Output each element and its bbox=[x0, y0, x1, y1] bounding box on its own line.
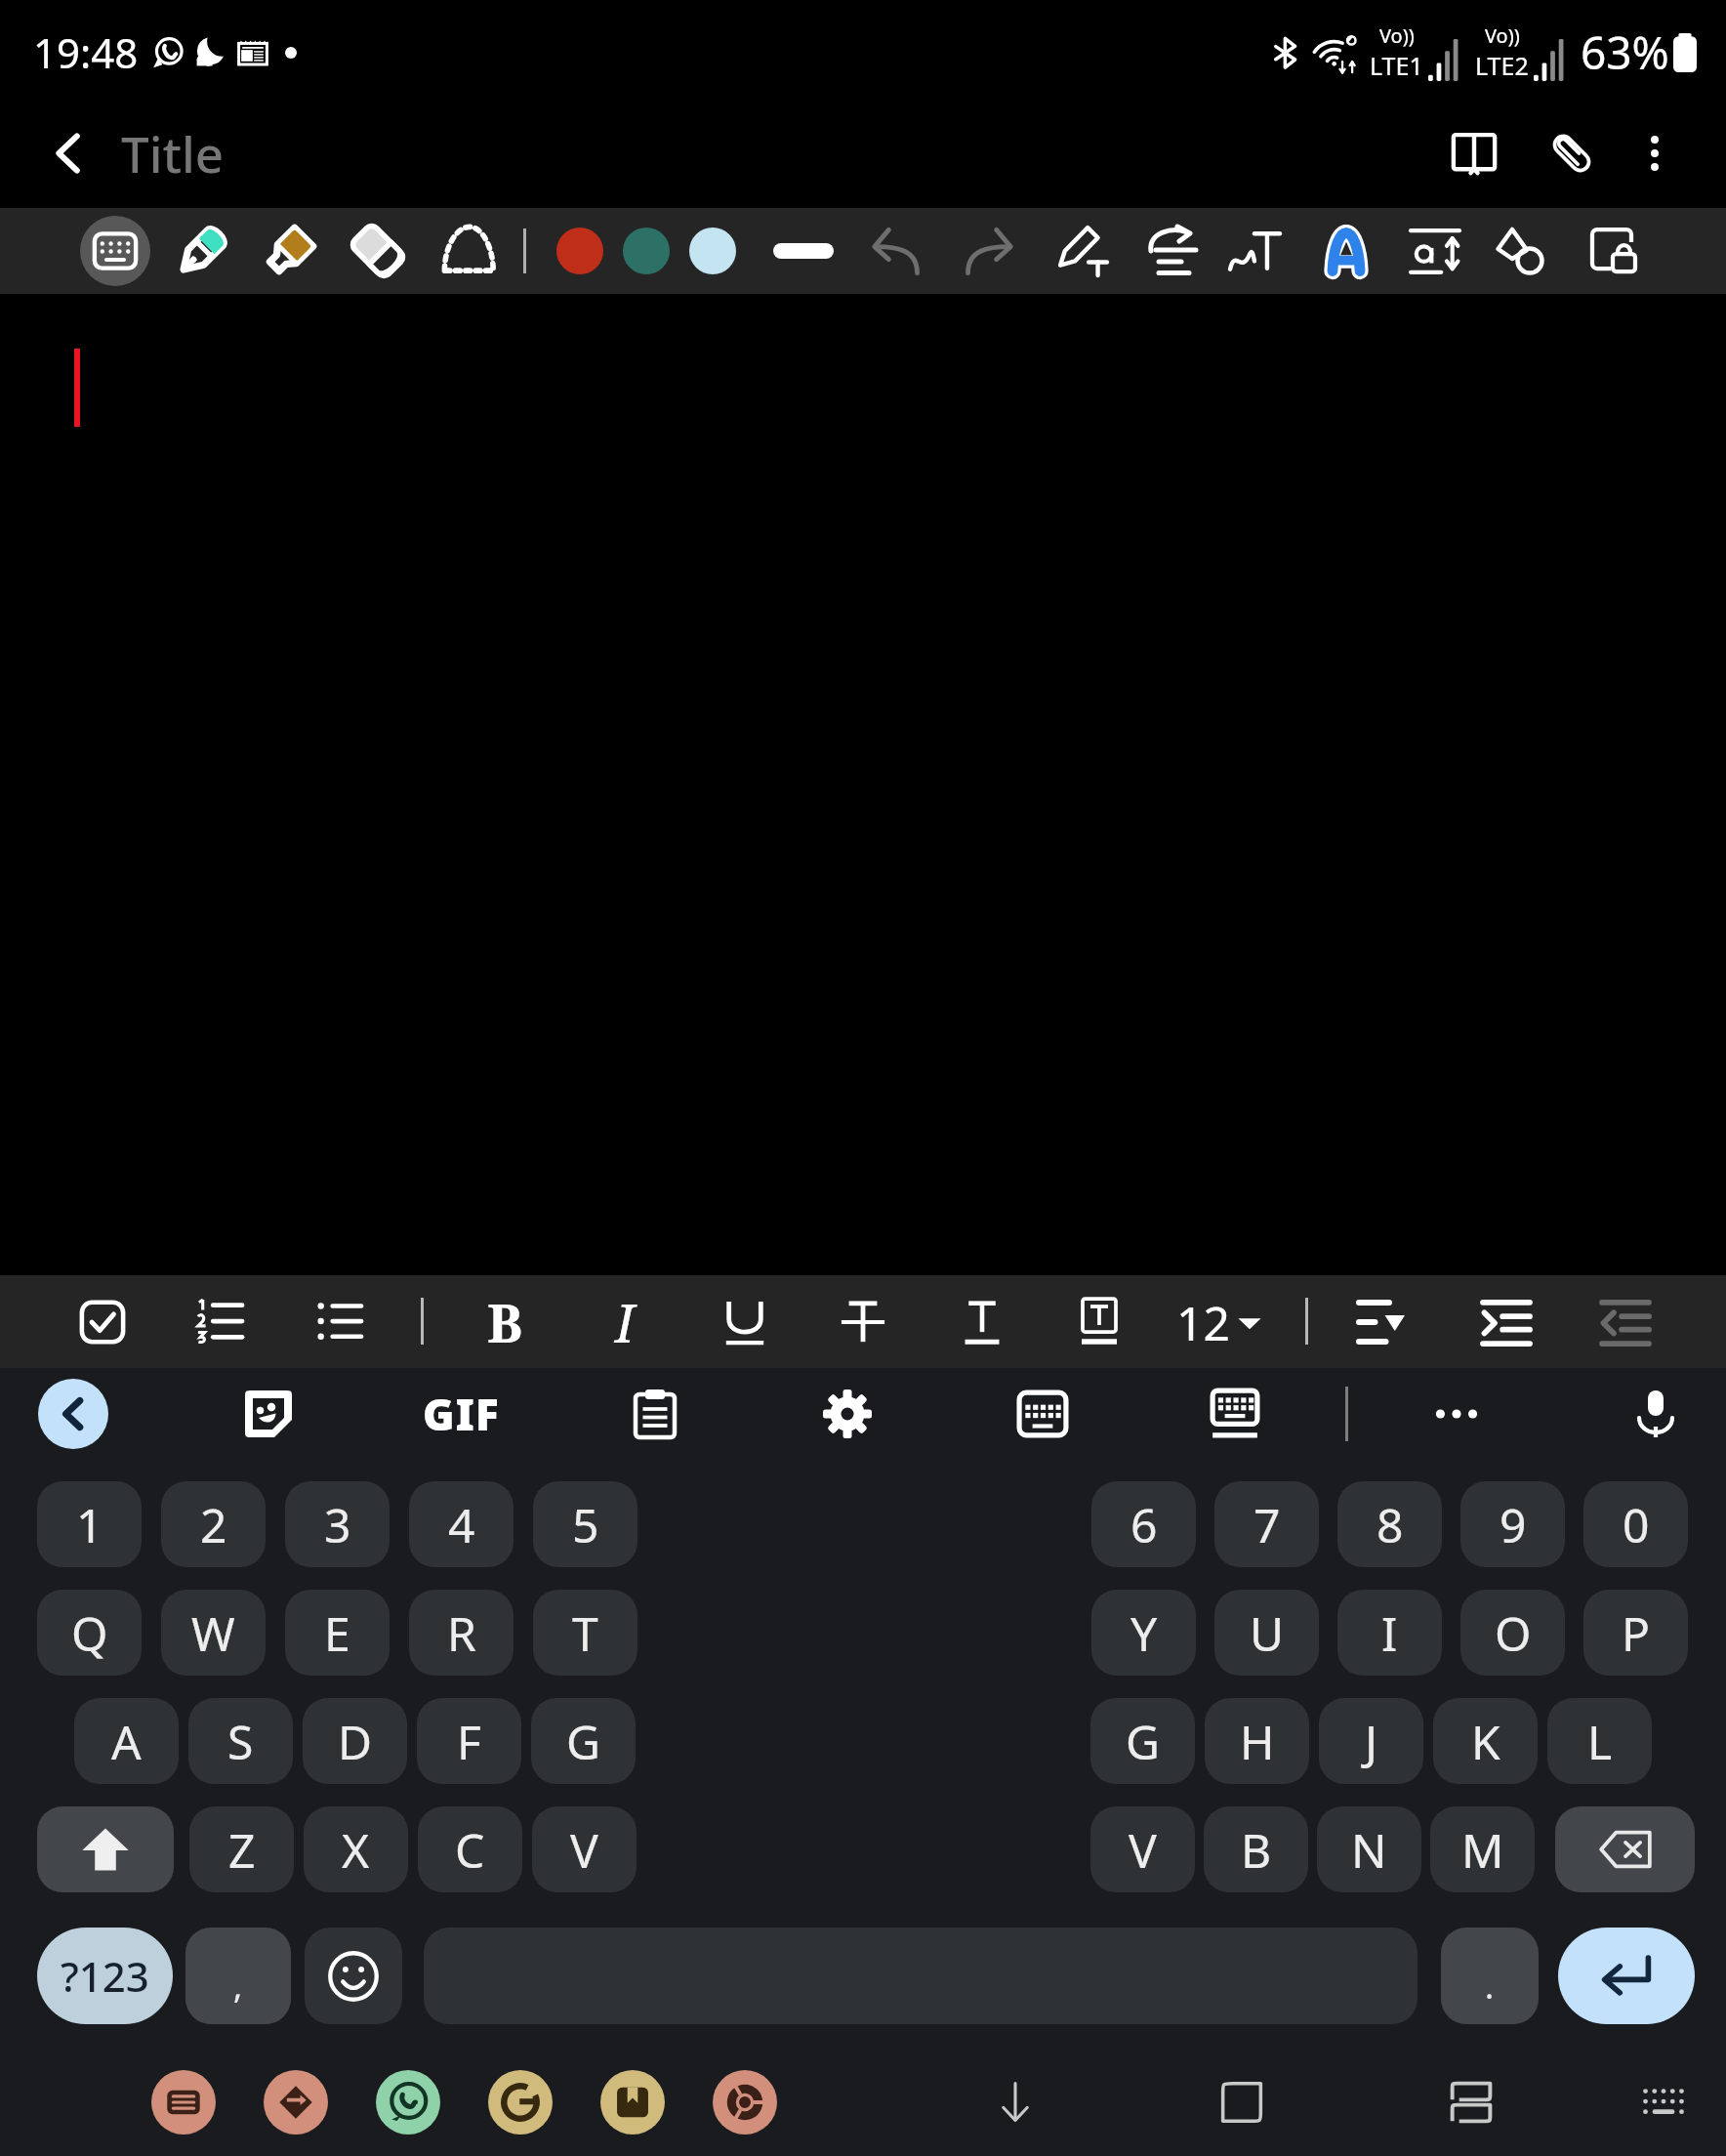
button[interactable]: Keyboard mode bbox=[80, 216, 150, 286]
button[interactable]: R bbox=[409, 1590, 514, 1676]
button[interactable]: X bbox=[304, 1806, 408, 1892]
button[interactable]: C bbox=[418, 1806, 522, 1892]
button[interactable]: More options bbox=[1418, 1375, 1496, 1453]
button[interactable]: Back bbox=[10, 103, 127, 203]
button[interactable]: Reading mode bbox=[1425, 103, 1523, 203]
button[interactable]: 2 bbox=[161, 1481, 266, 1567]
button[interactable]: P bbox=[1583, 1590, 1688, 1676]
button[interactable]: App shortcut bbox=[488, 2070, 553, 2135]
button[interactable]: Highlighter bbox=[254, 215, 326, 287]
button[interactable]: Shapes bbox=[1484, 215, 1556, 287]
button[interactable]: Text colour bbox=[943, 1283, 1021, 1361]
button[interactable]: Underline bbox=[706, 1283, 784, 1361]
button[interactable]: Hide keyboard bbox=[976, 2063, 1054, 2141]
button[interactable]: K bbox=[1433, 1698, 1538, 1784]
button[interactable]: Checklist bbox=[63, 1283, 142, 1361]
button[interactable]: B bbox=[1204, 1806, 1308, 1892]
button[interactable]: Strikethrough bbox=[824, 1283, 902, 1361]
button[interactable]: Enter bbox=[1558, 1928, 1695, 2024]
button[interactable]: Selection bbox=[432, 215, 505, 287]
button[interactable]: Redo bbox=[952, 215, 1024, 287]
button[interactable]: S bbox=[188, 1698, 293, 1784]
button[interactable]: Voice input bbox=[1617, 1375, 1695, 1453]
button[interactable]: N bbox=[1317, 1806, 1421, 1892]
button[interactable]: Text size bbox=[1399, 215, 1471, 287]
button[interactable]: Colour bbox=[681, 220, 744, 282]
button[interactable]: Pen to text bbox=[1048, 215, 1120, 287]
button[interactable]: D bbox=[303, 1698, 407, 1784]
button[interactable]: V bbox=[1090, 1806, 1195, 1892]
button[interactable]: G bbox=[531, 1698, 636, 1784]
button[interactable]: E bbox=[285, 1590, 390, 1676]
button[interactable]: Title bbox=[117, 119, 228, 187]
button[interactable]: Colour bbox=[615, 220, 678, 282]
button[interactable]: F bbox=[417, 1698, 521, 1784]
button[interactable]: 9 bbox=[1460, 1481, 1565, 1567]
button[interactable]: Comma bbox=[185, 1928, 291, 2024]
button[interactable]: Eraser bbox=[342, 215, 414, 287]
button[interactable]: Highlight bbox=[1060, 1283, 1138, 1361]
button[interactable]: Indent bbox=[1467, 1283, 1545, 1361]
button[interactable]: Pen bbox=[166, 215, 238, 287]
button[interactable]: O bbox=[1460, 1590, 1565, 1676]
button[interactable]: Split keyboard bbox=[1196, 1375, 1274, 1453]
button[interactable]: Bullet list bbox=[301, 1283, 379, 1361]
button[interactable]: Recents bbox=[1432, 2063, 1510, 2141]
button[interactable]: App shortcut bbox=[376, 2070, 440, 2135]
button[interactable]: L bbox=[1547, 1698, 1652, 1784]
button[interactable]: App shortcut bbox=[264, 2070, 328, 2135]
button[interactable]: H bbox=[1205, 1698, 1309, 1784]
button[interactable]: Home bbox=[1203, 2063, 1281, 2141]
button[interactable]: Z bbox=[189, 1806, 294, 1892]
button[interactable]: M bbox=[1430, 1806, 1535, 1892]
button[interactable]: Undo bbox=[861, 215, 933, 287]
button[interactable]: 4 bbox=[409, 1481, 514, 1567]
button[interactable]: Settings bbox=[808, 1375, 886, 1453]
button[interactable]: Handwriting to text bbox=[1219, 215, 1292, 287]
button[interactable]: I bbox=[1337, 1590, 1442, 1676]
button[interactable]: Font size 12 bbox=[1165, 1288, 1272, 1356]
button[interactable]: More options bbox=[1611, 103, 1699, 203]
button[interactable]: Y bbox=[1091, 1590, 1196, 1676]
button[interactable]: G bbox=[1090, 1698, 1195, 1784]
button[interactable]: Keyboard layout bbox=[1004, 1375, 1082, 1453]
button[interactable]: App shortcut bbox=[600, 2070, 665, 2135]
button[interactable]: V bbox=[532, 1806, 637, 1892]
button[interactable]: I bbox=[586, 1283, 664, 1361]
button[interactable]: 1 bbox=[37, 1481, 142, 1567]
button[interactable]: 6 bbox=[1091, 1481, 1196, 1567]
button[interactable]: Colour bbox=[549, 220, 611, 282]
button[interactable]: Numbered list bbox=[181, 1283, 259, 1361]
button[interactable]: Outdent bbox=[1586, 1283, 1664, 1361]
button[interactable]: Alignment bbox=[1344, 1283, 1422, 1361]
button[interactable]: Emoji bbox=[305, 1928, 402, 2024]
button[interactable]: Straighten bbox=[1136, 215, 1209, 287]
button[interactable]: 8 bbox=[1337, 1481, 1442, 1567]
button[interactable]: Backspace bbox=[1555, 1806, 1695, 1892]
button[interactable]: J bbox=[1319, 1698, 1423, 1784]
button[interactable]: Stroke width bbox=[768, 227, 839, 275]
button[interactable]: App shortcut bbox=[713, 2070, 777, 2135]
button[interactable]: 3 bbox=[285, 1481, 390, 1567]
button[interactable]: Stickers bbox=[229, 1375, 308, 1453]
button[interactable]: Expand toolbar bbox=[38, 1379, 108, 1449]
button[interactable]: Auto format bbox=[1310, 215, 1382, 287]
button[interactable]: Q bbox=[37, 1590, 142, 1676]
button[interactable]: A bbox=[74, 1698, 179, 1784]
button[interactable]: Keyboard bbox=[1624, 2063, 1703, 2141]
button[interactable]: T bbox=[533, 1590, 637, 1676]
button[interactable]: Attach file bbox=[1523, 103, 1621, 203]
button[interactable]: 5 bbox=[533, 1481, 637, 1567]
button[interactable]: W bbox=[161, 1590, 266, 1676]
button[interactable]: Shift bbox=[37, 1806, 174, 1892]
button[interactable]: GIF bbox=[407, 1379, 514, 1449]
button[interactable]: 7 bbox=[1214, 1481, 1319, 1567]
button[interactable]: U bbox=[1214, 1590, 1319, 1676]
button[interactable]: App shortcut bbox=[151, 2070, 216, 2135]
button[interactable]: Symbols bbox=[37, 1928, 173, 2024]
button[interactable]: 0 bbox=[1583, 1481, 1688, 1567]
button[interactable]: Period bbox=[1441, 1928, 1539, 2024]
button[interactable]: Clipboard bbox=[616, 1375, 694, 1453]
button[interactable]: Lock note bbox=[1578, 215, 1650, 287]
